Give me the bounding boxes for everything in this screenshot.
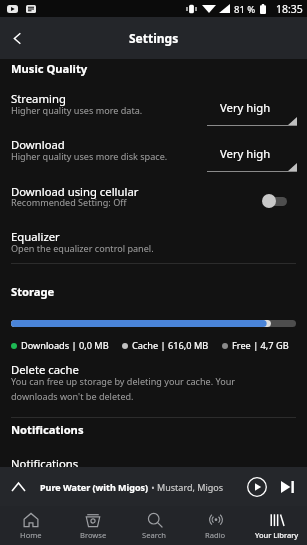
staticText: Higher quality uses more disk space. xyxy=(11,150,168,162)
staticText: Notifications xyxy=(11,456,79,471)
staticText: Home xyxy=(20,530,42,540)
staticText: Notifications xyxy=(11,422,84,437)
staticText: Browse xyxy=(80,530,107,540)
staticText: Higher quality uses more data. xyxy=(11,104,143,116)
staticText: Settings xyxy=(129,30,179,46)
staticText: Music Quality xyxy=(11,61,88,76)
button[interactable] xyxy=(0,180,307,225)
staticText: You can free up storage by deleting your… xyxy=(11,375,236,403)
button[interactable]: Home xyxy=(0,506,62,545)
staticText: Storage xyxy=(11,284,55,299)
staticText: Pure Water (with Migos) xyxy=(40,481,149,493)
button[interactable]: Download using cellular toggle xyxy=(262,193,292,209)
button[interactable] xyxy=(0,133,307,179)
button[interactable]: Radio xyxy=(185,506,246,545)
button[interactable]: Browse xyxy=(62,506,124,545)
button[interactable]: Back xyxy=(0,21,34,55)
staticText: • Mustard, Migos xyxy=(149,481,223,493)
button[interactable]: Search xyxy=(124,506,185,545)
button[interactable]: Your Library xyxy=(246,506,307,545)
staticText: Search xyxy=(142,530,167,540)
button[interactable] xyxy=(0,226,307,268)
button[interactable]: Quality: Very high xyxy=(207,146,297,172)
staticText: Very high xyxy=(220,146,271,161)
staticText: 18:35 xyxy=(276,2,303,16)
button[interactable] xyxy=(0,360,307,404)
staticText: Open the equalizer control panel. xyxy=(11,242,154,254)
button[interactable]: Quality: Very high xyxy=(207,100,297,126)
staticText: 81 % xyxy=(234,3,256,16)
button[interactable]: Expand player xyxy=(0,467,307,506)
button[interactable] xyxy=(0,452,307,474)
staticText: Free | 4,7 GB xyxy=(232,339,289,352)
staticText: Equalizer xyxy=(11,229,60,244)
staticText: Streaming xyxy=(11,91,66,106)
staticText: Your Library xyxy=(255,530,299,540)
staticText: Recommended Setting: Off xyxy=(11,196,127,208)
staticText: Delete cache xyxy=(11,362,79,377)
button[interactable]: Next track xyxy=(277,477,297,497)
button[interactable]: Expand player xyxy=(8,477,28,497)
staticText: Downloads | 0,0 MB xyxy=(21,339,109,352)
staticText: Download using cellular xyxy=(11,184,139,199)
button[interactable] xyxy=(0,87,307,133)
staticText: Radio xyxy=(205,530,226,540)
staticText: Download xyxy=(11,137,65,152)
staticText: Cache | 616,0 MB xyxy=(132,339,209,352)
staticText: Very high xyxy=(220,100,271,115)
button[interactable]: Play xyxy=(246,476,268,498)
